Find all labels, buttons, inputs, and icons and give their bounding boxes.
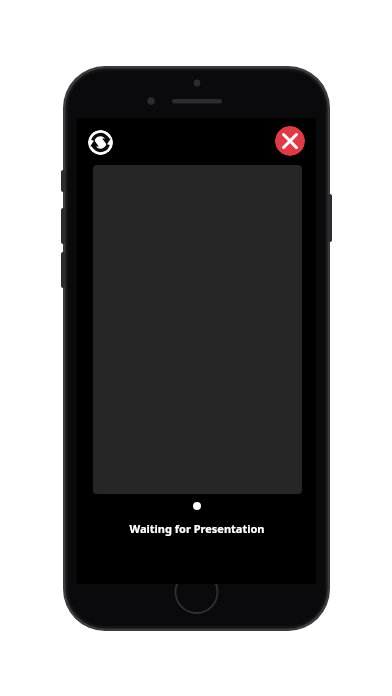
button[interactable]: Refresh presentation: [88, 130, 113, 155]
staticText: Waiting for Presentation: [129, 521, 265, 536]
button[interactable]: Close: [275, 126, 305, 156]
